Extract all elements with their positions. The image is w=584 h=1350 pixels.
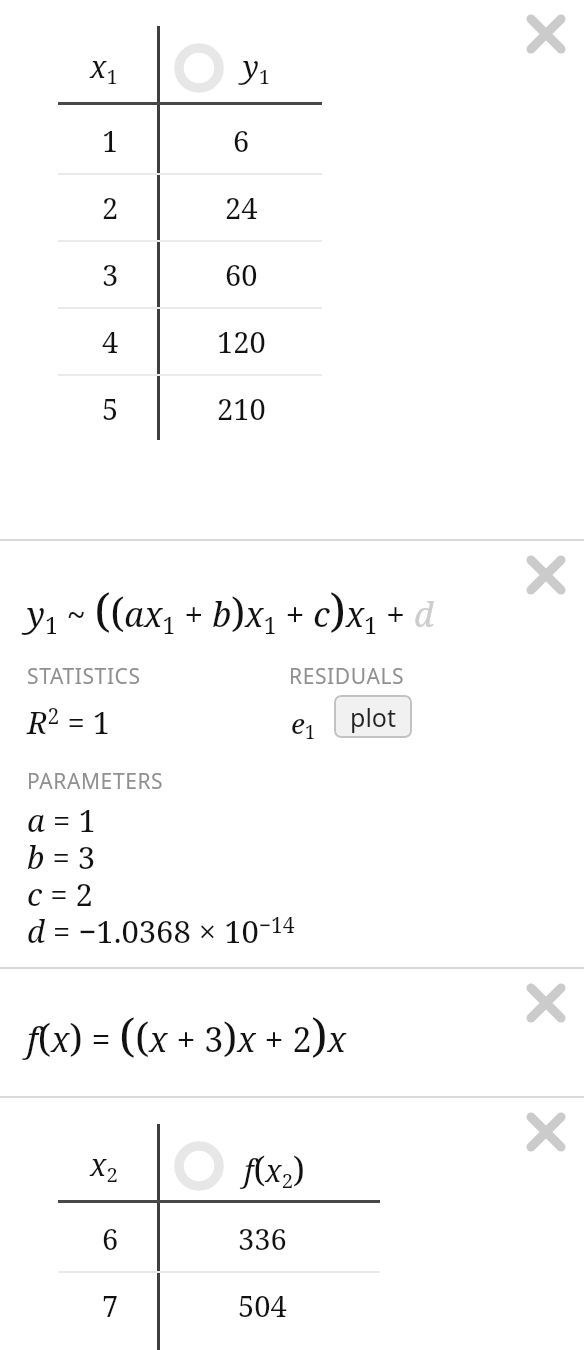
staticText: x1	[90, 46, 118, 90]
staticText: 1	[102, 121, 119, 160]
staticText: plot	[350, 700, 396, 734]
button[interactable]: Delete expression	[518, 975, 574, 1031]
button[interactable]: Delete expression	[518, 6, 574, 62]
button[interactable]: Delete expression	[518, 547, 574, 603]
staticText: 6	[102, 1219, 119, 1258]
staticText: PARAMETERS	[27, 767, 164, 796]
staticText: 120	[217, 322, 266, 361]
staticText: e1	[291, 704, 316, 745]
staticText: STATISTICS	[27, 662, 141, 691]
staticText: d = −1.0368 × 10−14	[27, 910, 295, 952]
staticText: 336	[238, 1219, 287, 1258]
staticText: 5	[102, 389, 119, 428]
button[interactable]: Change point style	[172, 41, 226, 95]
staticText: a = 1	[27, 799, 96, 841]
staticText: 6	[233, 121, 250, 160]
staticText: 210	[217, 389, 266, 428]
staticText: 2	[102, 188, 119, 227]
staticText: b = 3	[27, 836, 96, 878]
staticText: 4	[102, 322, 119, 361]
button[interactable]: Change point style	[0, 0, 584, 539]
staticText: R2 = 1	[27, 701, 111, 743]
button[interactable]: Change point style	[172, 1139, 226, 1193]
staticText: y1 ~ ((ax1 + b)x1 + c)x1 + d	[27, 578, 434, 641]
button[interactable]: Delete expression	[518, 1104, 574, 1160]
button[interactable]: f(x) = ((x + 3)x + 2)x	[0, 969, 584, 1096]
staticText: 7	[102, 1286, 119, 1325]
staticText: 504	[238, 1286, 287, 1325]
staticText: 24	[225, 188, 258, 227]
staticText: f(x) = ((x + 3)x + 2)x	[27, 1003, 346, 1066]
staticText: 60	[225, 255, 258, 294]
button[interactable]: plot	[334, 695, 412, 738]
staticText: RESIDUALS	[289, 662, 405, 691]
staticText: f(x2)	[244, 1146, 305, 1194]
button[interactable]: Change point style	[0, 1098, 584, 1350]
staticText: c = 2	[27, 873, 93, 915]
staticText: y1	[243, 46, 271, 90]
staticText: x2	[90, 1144, 118, 1188]
button[interactable]: y1 ~ ((ax1 + b)x1 + c)x1 + d	[0, 541, 584, 967]
staticText: 3	[102, 255, 119, 294]
